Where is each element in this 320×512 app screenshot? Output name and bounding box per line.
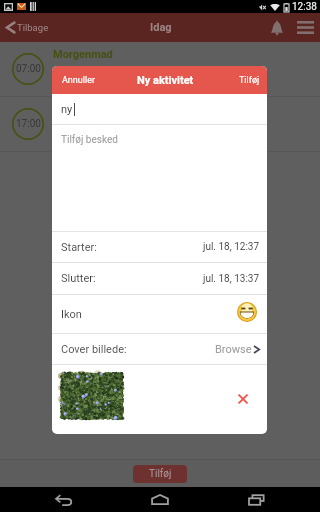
staticText: Tilføj bbox=[239, 75, 260, 86]
button[interactable]: Home bbox=[128, 487, 192, 512]
button[interactable]: 07:00 bbox=[0, 42, 320, 97]
button[interactable]: Cover billede: bbox=[52, 334, 267, 364]
button[interactable]: Tilføj besked bbox=[52, 125, 267, 231]
staticText: Ny aktivitet bbox=[137, 74, 194, 87]
staticText: Tilføj besked bbox=[61, 134, 118, 146]
button[interactable]: ny bbox=[52, 94, 267, 124]
button[interactable]: Notifications bbox=[262, 13, 291, 42]
staticText: Annuller bbox=[62, 75, 95, 86]
staticText: 12:38 bbox=[292, 1, 317, 13]
staticText: jul. 18, 13:37 bbox=[203, 273, 260, 285]
staticText: Cover billede: bbox=[61, 343, 127, 356]
staticText: ny bbox=[61, 103, 73, 116]
staticText: Tilbage bbox=[17, 22, 49, 33]
staticText: Slutter: bbox=[61, 272, 96, 285]
button[interactable]: Ikon bbox=[52, 295, 267, 333]
button[interactable]: 17:00 bbox=[0, 97, 320, 152]
staticText: Tilføj bbox=[149, 468, 172, 480]
button[interactable]: Annuller bbox=[52, 66, 105, 94]
button[interactable]: Recents bbox=[224, 487, 288, 512]
staticText: 17:00 bbox=[16, 118, 41, 130]
staticText: Browse bbox=[215, 343, 252, 356]
button[interactable]: Tilbage bbox=[0, 13, 59, 42]
button[interactable]: Tilføj bbox=[232, 66, 267, 94]
button[interactable]: Menu bbox=[291, 13, 320, 42]
staticText: Starter: bbox=[61, 241, 97, 254]
staticText: jul. 18, 12:37 bbox=[203, 241, 260, 253]
staticText: Morgenmad bbox=[53, 48, 113, 61]
staticText: Idag bbox=[150, 21, 172, 34]
staticText: 07:00 bbox=[16, 63, 41, 75]
staticText: Ikon bbox=[61, 308, 82, 321]
button[interactable]: Remove cover image bbox=[235, 391, 251, 407]
button[interactable]: Tilføj bbox=[133, 465, 187, 483]
button[interactable]: Slutter: bbox=[52, 263, 267, 294]
button[interactable]: Back bbox=[32, 487, 96, 512]
button[interactable]: Starter: bbox=[52, 232, 267, 262]
